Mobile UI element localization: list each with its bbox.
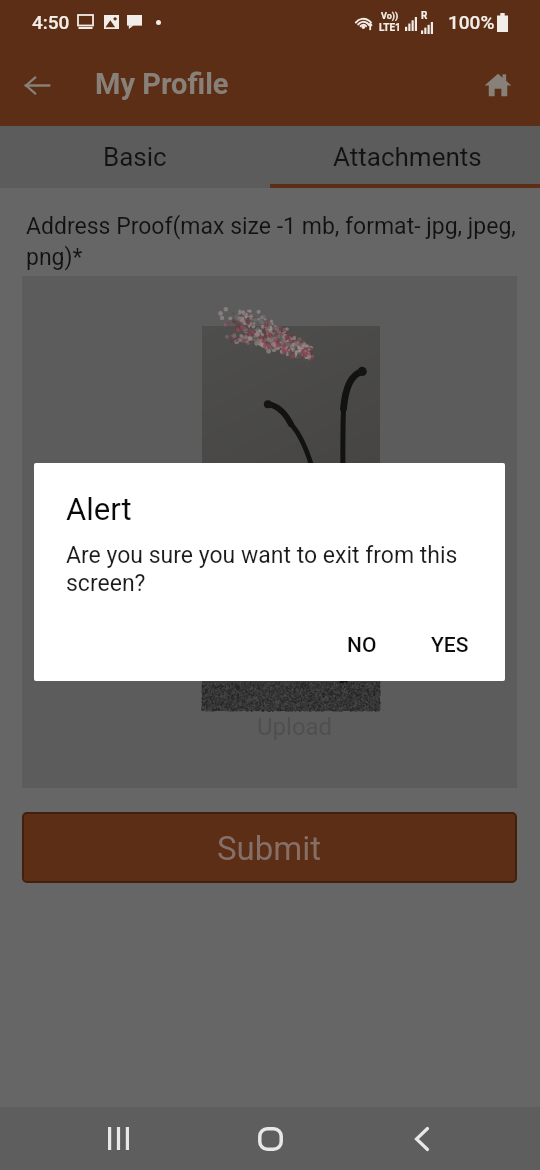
- button[interactable]: Upload: [22, 276, 517, 788]
- staticText: My Profile: [95, 67, 229, 101]
- button[interactable]: Attachments: [270, 126, 540, 188]
- staticText: NO: [347, 633, 377, 658]
- button[interactable]: YES: [404, 621, 496, 670]
- button[interactable]: Basic: [0, 126, 270, 188]
- staticText: R: [421, 10, 428, 22]
- staticText: 4:50: [32, 11, 70, 33]
- staticText: Basic: [103, 142, 167, 172]
- button[interactable]: Back: [13, 61, 61, 109]
- staticText: Address Proof(max size -1 mb, format- jp…: [26, 213, 521, 270]
- staticText: Submit: [217, 829, 322, 868]
- button[interactable]: Recent apps: [84, 1107, 152, 1170]
- staticText: Upload: [257, 713, 333, 741]
- staticText: Attachments: [333, 142, 482, 172]
- button[interactable]: NO: [320, 621, 404, 670]
- button[interactable]: Submit: [22, 812, 517, 883]
- staticText: Vo)): [381, 11, 399, 22]
- staticText: YES: [431, 633, 469, 658]
- staticText: Alert: [66, 491, 132, 527]
- staticText: Are you sure you want to exit from this …: [66, 542, 466, 597]
- button[interactable]: Home: [236, 1107, 304, 1170]
- button[interactable]: Home: [474, 61, 522, 109]
- staticText: 100%: [448, 11, 495, 33]
- staticText: LTE1: [379, 22, 401, 34]
- button[interactable]: Back: [388, 1107, 456, 1170]
